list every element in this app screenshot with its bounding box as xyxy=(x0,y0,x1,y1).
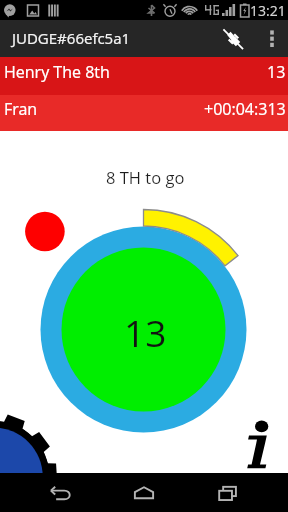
button[interactable]: Henry The 8th xyxy=(0,57,288,95)
button[interactable]: More options xyxy=(255,20,288,57)
button[interactable]: Recents xyxy=(204,473,252,512)
button[interactable]: Back xyxy=(36,473,84,512)
staticText: 8 TH to go xyxy=(106,166,185,188)
button[interactable]: Info xyxy=(243,416,275,448)
staticText: JUDGE#66efc5a1 xyxy=(12,28,131,48)
button[interactable]: Settings xyxy=(0,433,40,512)
staticText: +00:04:313 xyxy=(204,98,286,120)
staticText: Fran xyxy=(4,98,38,120)
staticText: 13 xyxy=(267,61,286,83)
button[interactable]: Home xyxy=(120,473,168,512)
button[interactable]: Fran xyxy=(0,95,288,131)
staticText: 13 xyxy=(124,307,167,357)
staticText: Henry The 8th xyxy=(4,61,110,83)
staticText: 13:21 xyxy=(250,1,286,20)
button[interactable]: Connection xyxy=(214,20,251,57)
